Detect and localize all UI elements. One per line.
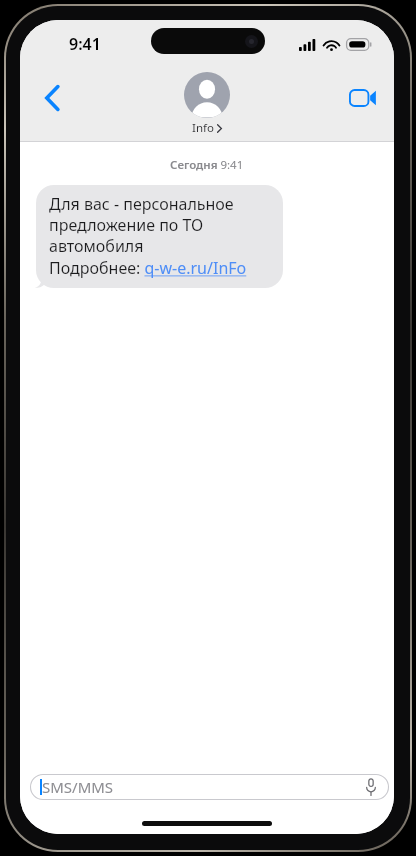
button[interactable]: Для вас - персональное предложение по ТО… — [36, 185, 283, 288]
staticText: SMS/MMS — [42, 777, 114, 797]
button[interactable] — [30, 774, 389, 800]
button[interactable]: Back — [30, 76, 74, 120]
button[interactable]: FaceTime video call — [340, 76, 384, 120]
staticText: 9:41 — [69, 33, 101, 55]
staticText: Для вас - персональное предложение по ТО… — [49, 193, 270, 257]
button[interactable]: Info — [184, 72, 230, 136]
staticText: Сегодня 9:41 — [170, 157, 244, 173]
staticText: Info — [192, 120, 214, 136]
staticText: Подробнее: q-w-e.ru/InFo — [49, 257, 247, 279]
button[interactable]: Dictate — [360, 776, 382, 798]
